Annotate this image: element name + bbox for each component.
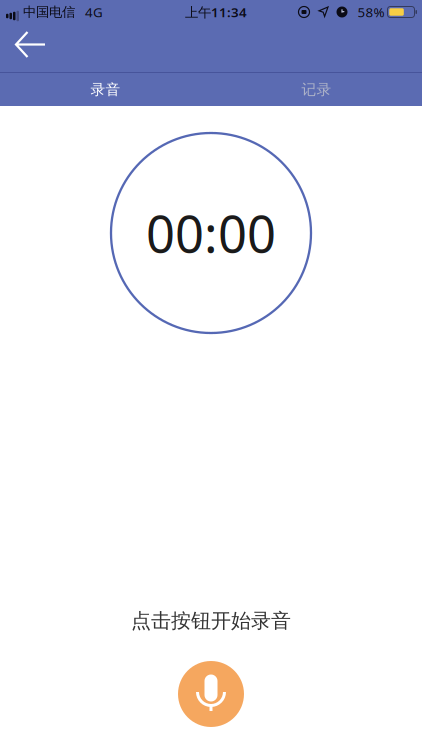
staticText: 58%	[357, 3, 384, 21]
button[interactable]: 记录	[211, 73, 422, 106]
staticText: 00:00	[146, 199, 276, 267]
staticText: 4G	[85, 3, 103, 21]
staticText: 点击按钮开始录音	[131, 608, 291, 633]
staticText: 上午11:34	[185, 3, 247, 21]
staticText: 中国电信	[23, 4, 75, 20]
button[interactable]: 录音	[0, 73, 211, 106]
staticText: 录音	[90, 80, 120, 98]
staticText: 记录	[301, 80, 331, 98]
button[interactable]: Back	[0, 24, 45, 72]
button[interactable]: 开始录音	[178, 661, 244, 727]
